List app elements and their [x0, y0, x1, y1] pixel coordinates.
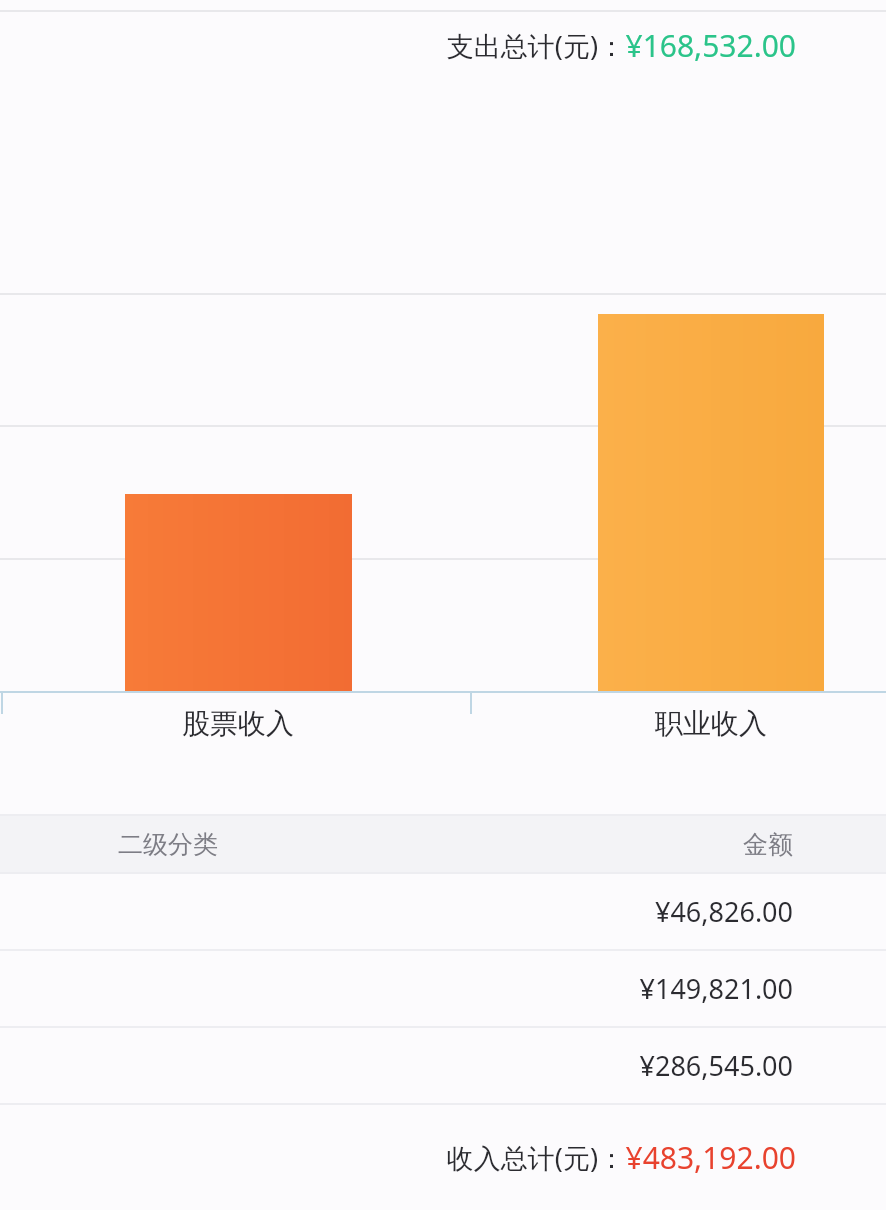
- staticText: ¥483,192.00: [625, 1137, 796, 1178]
- staticText: 支出总计(元)：: [446, 27, 625, 64]
- button[interactable]: 支出总计(元)：: [0, 0, 886, 90]
- staticText: ¥149,821.00: [639, 970, 793, 1007]
- button[interactable]: ¥149,821.00: [0, 951, 886, 1026]
- staticText: ¥168,532.00: [625, 25, 796, 66]
- button[interactable]: 二级分类: [0, 816, 886, 872]
- staticText: ¥286,545.00: [639, 1047, 793, 1084]
- button[interactable]: 股票收入: [138, 706, 338, 741]
- button[interactable]: ¥286,545.00: [0, 1028, 886, 1103]
- staticText: 二级分类: [118, 829, 218, 860]
- staticText: 收入总计(元)：: [446, 1139, 625, 1176]
- staticText: ¥46,826.00: [654, 893, 793, 930]
- staticText: 股票收入: [182, 706, 294, 741]
- button[interactable]: 职业收入: [611, 706, 811, 741]
- button[interactable]: 收入总计(元)：: [0, 1105, 886, 1209]
- button[interactable]: ¥46,826.00: [0, 874, 886, 949]
- staticText: 金额: [743, 829, 793, 860]
- staticText: 职业收入: [655, 706, 767, 741]
